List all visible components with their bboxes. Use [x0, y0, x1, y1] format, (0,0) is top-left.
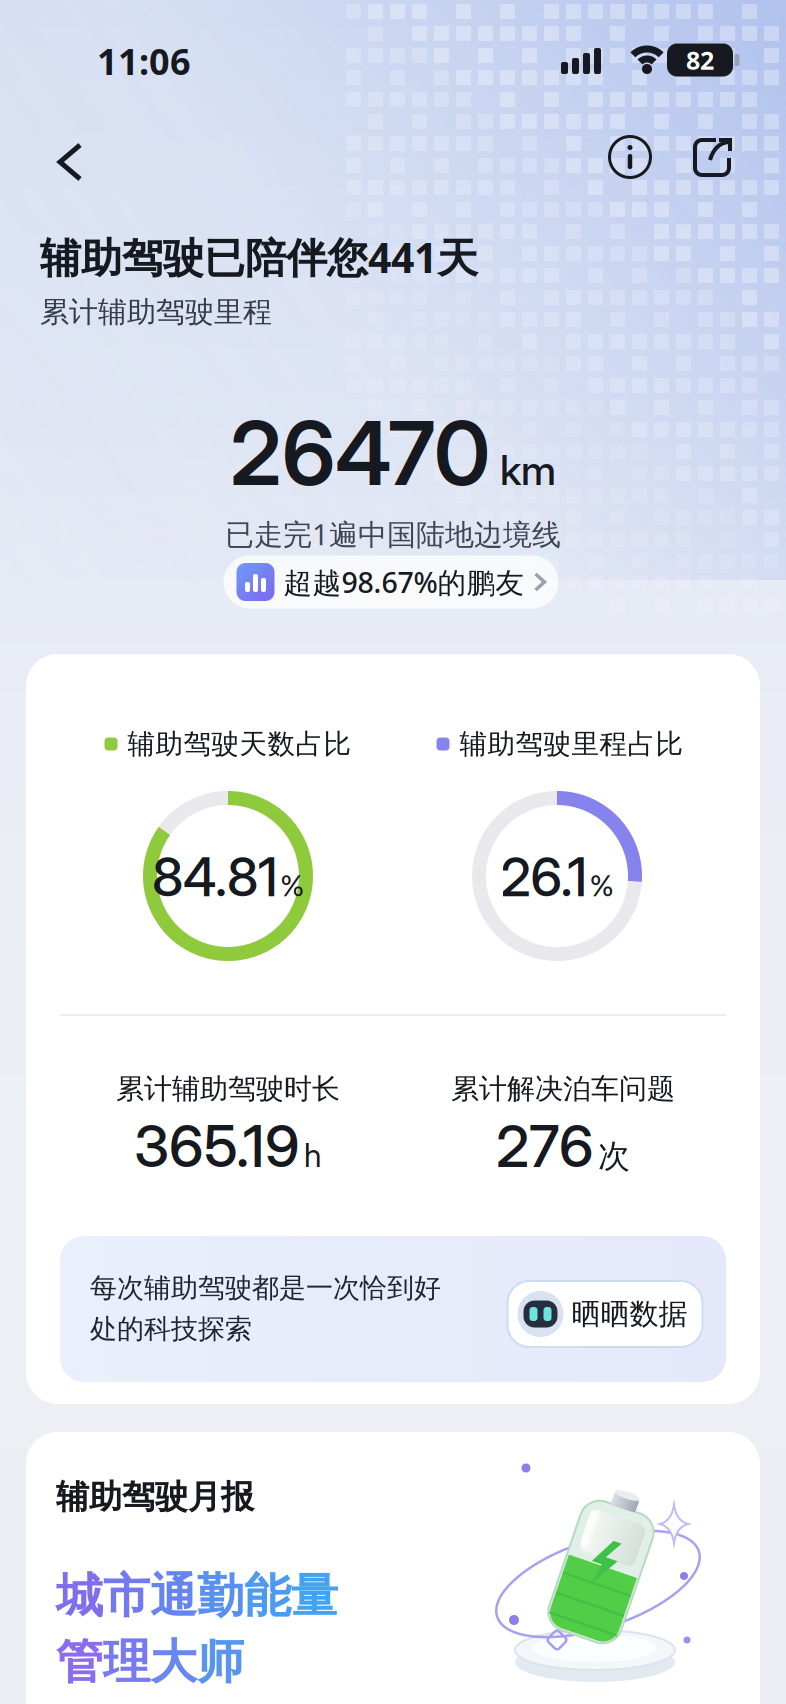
- staticText: 次: [598, 1136, 630, 1177]
- staticText: 师: [197, 1632, 244, 1692]
- staticText: 能: [244, 1566, 291, 1626]
- staticText: 辅助驾驶月报: [56, 1476, 254, 1518]
- staticText: 84.81: [152, 845, 278, 909]
- staticText: 365.19: [134, 1111, 300, 1181]
- staticText: %: [280, 868, 304, 903]
- staticText: 276: [496, 1111, 594, 1181]
- staticText: 超越98.67%的鹏友: [283, 563, 524, 601]
- staticText: 累计辅助驾驶里程: [40, 294, 272, 330]
- staticText: 城: [56, 1566, 103, 1626]
- staticText: 辅助驾驶天数占比: [127, 727, 351, 761]
- button[interactable]: Back: [50, 140, 94, 184]
- staticText: km: [500, 445, 556, 495]
- staticText: 辅助驾驶已陪伴您441天: [40, 229, 478, 285]
- staticText: 已走完1遍中国陆地边境线: [225, 514, 561, 554]
- staticText: 通: [150, 1566, 197, 1626]
- staticText: 理: [103, 1632, 150, 1692]
- staticText: 82: [686, 43, 714, 77]
- staticText: 26.1: [500, 845, 587, 909]
- staticText: 晒晒数据: [571, 1296, 687, 1332]
- staticText: 累计辅助驾驶时长: [116, 1071, 340, 1107]
- staticText: 量: [291, 1566, 338, 1626]
- button[interactable]: Info: [606, 133, 654, 181]
- staticText: 11:06: [97, 36, 191, 85]
- staticText: 累计解决泊车问题: [451, 1071, 675, 1107]
- staticText: 大: [150, 1632, 197, 1692]
- staticText: 每次辅助驾驶都是一次恰到好: [90, 1271, 441, 1305]
- staticText: 辅助驾驶里程占比: [459, 727, 683, 761]
- staticText: h: [304, 1136, 322, 1175]
- staticText: 勤: [197, 1566, 244, 1626]
- staticText: 市: [103, 1566, 150, 1626]
- button[interactable]: 超越98.67%的鹏友: [223, 555, 558, 608]
- staticText: %: [589, 868, 613, 903]
- staticText: 管: [56, 1632, 103, 1692]
- button[interactable]: Share: [689, 133, 735, 179]
- staticText: 26470: [230, 400, 490, 506]
- button[interactable]: 晒晒数据: [507, 1281, 702, 1347]
- staticText: 处的科技探索: [90, 1312, 252, 1346]
